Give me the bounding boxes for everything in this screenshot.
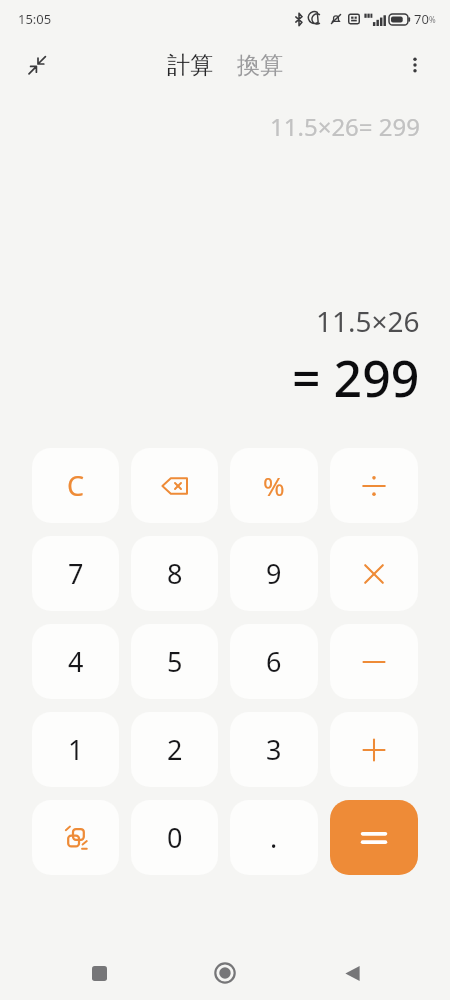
- button[interactable]: 計算: [159, 45, 221, 86]
- button[interactable]: .: [230, 800, 318, 875]
- staticText: 計算: [167, 51, 213, 80]
- button[interactable]: 6: [230, 624, 318, 699]
- button[interactable]: 換算: [229, 45, 291, 86]
- button[interactable]: Back: [324, 946, 380, 1000]
- button[interactable]: Scientific mode: [32, 800, 119, 875]
- staticText: 15:05: [18, 10, 52, 28]
- staticText: 4: [68, 643, 84, 680]
- button[interactable]: 0: [131, 800, 218, 875]
- button[interactable]: Recent apps: [71, 946, 127, 1000]
- staticText: 6: [266, 643, 282, 680]
- button[interactable]: 1: [32, 712, 119, 787]
- staticText: %: [429, 14, 436, 25]
- button[interactable]: 8: [131, 536, 218, 611]
- button[interactable]: 3: [230, 712, 318, 787]
- staticText: 70: [414, 10, 429, 28]
- button[interactable]: Minus: [330, 624, 418, 699]
- button[interactable]: Percent: [230, 448, 318, 523]
- button[interactable]: Equals: [330, 800, 418, 875]
- staticText: C: [67, 467, 85, 504]
- button[interactable]: Plus: [330, 712, 418, 787]
- staticText: 5: [167, 643, 183, 680]
- staticText: 11.5×26= 299: [270, 110, 420, 143]
- staticText: 換算: [237, 51, 283, 80]
- staticText: .: [270, 819, 278, 856]
- staticText: 9: [266, 555, 282, 592]
- staticText: %: [263, 468, 285, 503]
- button[interactable]: Divide: [330, 448, 418, 523]
- button[interactable]: 7: [32, 536, 119, 611]
- staticText: = 299: [292, 344, 420, 412]
- staticText: 11.5×26: [316, 302, 420, 340]
- staticText: 0: [167, 819, 183, 856]
- staticText: 8: [167, 555, 183, 592]
- button[interactable]: 2: [131, 712, 218, 787]
- button[interactable]: 5: [131, 624, 218, 699]
- staticText: 1: [68, 731, 84, 768]
- button[interactable]: More options: [392, 42, 438, 88]
- button[interactable]: Clear: [32, 448, 119, 523]
- button[interactable]: 4: [32, 624, 119, 699]
- staticText: 3: [266, 731, 282, 768]
- staticText: 2: [167, 731, 183, 768]
- staticText: 7: [68, 555, 84, 592]
- button[interactable]: Multiply: [330, 536, 418, 611]
- button[interactable]: Collapse: [14, 42, 60, 88]
- button[interactable]: Backspace: [131, 448, 218, 523]
- button[interactable]: Home: [197, 946, 253, 1000]
- button[interactable]: 9: [230, 536, 318, 611]
